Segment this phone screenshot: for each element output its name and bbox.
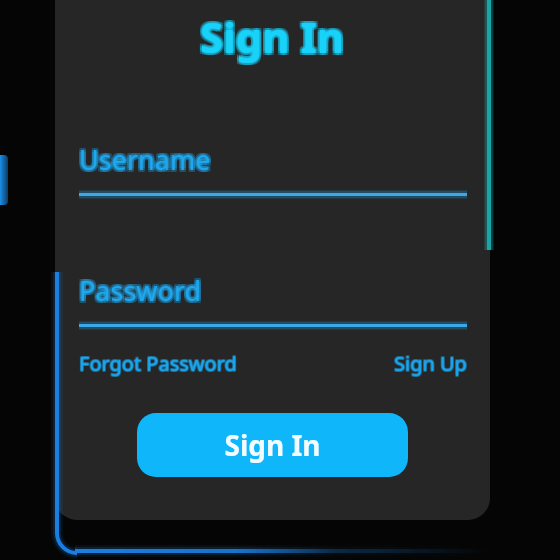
staticText: Username xyxy=(77,143,209,180)
staticText: Forgot Password xyxy=(78,350,236,377)
staticText: Forgot Password xyxy=(78,349,236,376)
button[interactable]: Username xyxy=(79,141,467,197)
staticText: Sign In xyxy=(200,6,345,63)
staticText: Password xyxy=(81,274,204,311)
staticText: Sign In xyxy=(202,10,347,67)
staticText: Forgot Password xyxy=(80,351,238,378)
staticText: Sign Up xyxy=(395,351,468,378)
staticText: Forgot Password xyxy=(78,351,236,378)
staticText: Sign In xyxy=(200,10,345,67)
staticText: Sign Up xyxy=(393,350,466,377)
staticText: Sign Up xyxy=(394,351,467,378)
staticText: Username xyxy=(81,139,213,176)
staticText: Sign In xyxy=(198,6,343,63)
staticText: Username xyxy=(81,141,213,178)
staticText: Password xyxy=(77,274,200,311)
staticText: Password xyxy=(77,272,200,309)
staticText: Forgot Password xyxy=(79,351,237,378)
staticText: Sign Up xyxy=(395,350,468,377)
staticText: Sign In xyxy=(202,6,347,63)
button[interactable]: Forgot Password xyxy=(79,350,237,377)
staticText: Password xyxy=(81,272,204,309)
staticText: Username xyxy=(77,139,209,176)
staticText: Sign In xyxy=(198,8,343,65)
staticText: Username xyxy=(81,143,213,180)
button[interactable]: Sign Up xyxy=(394,350,467,377)
button[interactable]: Password xyxy=(79,272,467,328)
staticText: Sign In xyxy=(198,10,343,67)
staticText: Username xyxy=(77,141,209,178)
staticText: Sign Up xyxy=(394,349,467,376)
staticText: Forgot Password xyxy=(79,350,237,377)
staticText: Sign Up xyxy=(395,349,468,376)
staticText: Sign Up xyxy=(393,351,466,378)
staticText: Sign In xyxy=(224,426,321,464)
staticText: Sign In xyxy=(202,8,347,65)
staticText: Password xyxy=(79,272,202,309)
staticText: Username xyxy=(79,143,211,180)
staticText: Forgot Password xyxy=(80,350,238,377)
staticText: Forgot Password xyxy=(79,349,237,376)
staticText: Sign In xyxy=(200,8,345,65)
staticText: Sign Up xyxy=(393,349,466,376)
staticText: Password xyxy=(77,270,200,307)
staticText: Password xyxy=(79,270,202,307)
staticText: Sign Up xyxy=(394,350,467,377)
staticText: Password xyxy=(79,274,202,311)
staticText: Password xyxy=(81,270,204,307)
staticText: Username xyxy=(79,141,211,178)
button[interactable]: Sign In xyxy=(137,413,408,477)
staticText: Forgot Password xyxy=(80,349,238,376)
staticText: Username xyxy=(79,139,211,176)
